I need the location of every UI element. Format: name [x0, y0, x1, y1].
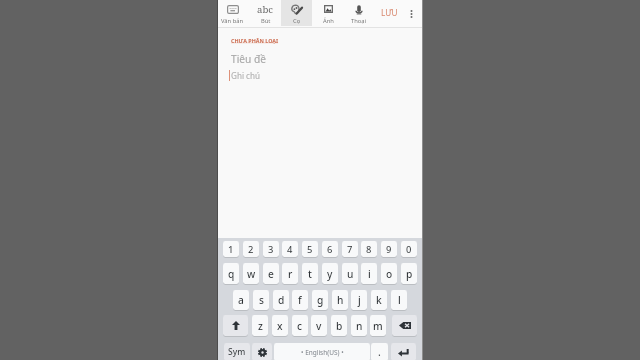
button[interactable]: h — [332, 290, 348, 310]
button[interactable]: m — [370, 315, 386, 336]
button[interactable]: Keyboard settings — [252, 343, 272, 360]
button[interactable]: i — [361, 263, 377, 284]
staticText: • English(US) • — [301, 348, 344, 357]
staticText: a — [238, 293, 244, 307]
button[interactable]: 1 — [223, 241, 239, 257]
button[interactable]: j — [351, 290, 367, 310]
staticText: 5 — [307, 243, 313, 256]
staticText: u — [347, 267, 354, 281]
staticText: e — [268, 267, 274, 281]
staticText: g — [317, 293, 324, 307]
button[interactable]: Enter — [391, 343, 416, 360]
button[interactable]: 2 — [243, 241, 259, 257]
button[interactable]: x — [272, 315, 288, 336]
staticText: n — [356, 319, 363, 333]
button[interactable]: 7 — [342, 241, 358, 257]
staticText: Bút — [261, 17, 271, 25]
staticText: . — [378, 345, 381, 359]
button[interactable]: 8 — [361, 241, 377, 257]
button[interactable]: Shift — [223, 315, 248, 336]
button[interactable]: 6 — [322, 241, 338, 257]
button[interactable]: w — [243, 263, 259, 284]
staticText: Cọ — [293, 17, 301, 25]
button[interactable]: z — [252, 315, 268, 336]
staticText: b — [336, 319, 343, 333]
staticText: l — [398, 293, 401, 307]
button[interactable]: n — [351, 315, 367, 336]
button[interactable]: d — [273, 290, 289, 310]
staticText: LƯU — [381, 7, 398, 18]
staticText: q — [228, 267, 235, 281]
staticText: h — [337, 293, 344, 307]
button[interactable]: Thoại — [343, 0, 374, 25]
staticText: abc — [257, 3, 274, 16]
button[interactable]: LƯU — [374, 0, 404, 25]
staticText: s — [259, 293, 264, 307]
staticText: v — [316, 319, 322, 333]
button[interactable]: q — [223, 263, 239, 284]
staticText: i — [368, 267, 371, 281]
staticText: r — [288, 267, 293, 281]
button[interactable]: c — [292, 315, 308, 336]
staticText: 9 — [386, 243, 392, 256]
button[interactable]: 5 — [302, 241, 318, 257]
button[interactable]: y — [322, 263, 338, 284]
staticText: f — [298, 293, 302, 307]
button[interactable]: CHƯA PHÂN LOẠI — [231, 37, 279, 44]
staticText: 1 — [228, 243, 234, 256]
button[interactable]: s — [253, 290, 269, 310]
button[interactable]: 9 — [381, 241, 397, 257]
staticText: Ảnh — [323, 17, 334, 25]
staticText: y — [327, 267, 333, 281]
staticText: k — [376, 293, 382, 307]
button[interactable]: 0 — [401, 241, 417, 257]
button[interactable]: Space — [274, 343, 370, 360]
staticText: x — [277, 319, 283, 333]
staticText: o — [386, 267, 393, 281]
button[interactable]: t — [302, 263, 318, 284]
staticText: j — [358, 293, 361, 307]
staticText: t — [308, 267, 312, 281]
button[interactable]: o — [381, 263, 397, 284]
staticText: m — [373, 319, 383, 333]
button[interactable]: r — [282, 263, 298, 284]
button[interactable]: a — [233, 290, 249, 310]
button[interactable]: e — [263, 263, 279, 284]
button[interactable]: Văn bản — [217, 0, 248, 25]
staticText: p — [406, 267, 413, 281]
button[interactable]: . — [371, 343, 388, 360]
button[interactable]: g — [312, 290, 328, 310]
button[interactable]: 4 — [282, 241, 298, 257]
staticText: 2 — [248, 243, 254, 256]
button[interactable]: l — [391, 290, 407, 310]
staticText: w — [247, 267, 256, 281]
button[interactable]: 3 — [263, 241, 279, 257]
staticText: 7 — [347, 243, 353, 256]
staticText: Sym — [228, 346, 246, 358]
staticText: Thoại — [351, 17, 367, 25]
staticText: 6 — [327, 243, 333, 256]
button[interactable]: u — [342, 263, 358, 284]
button[interactable]: k — [371, 290, 387, 310]
staticText: Ghi chú — [231, 70, 260, 81]
staticText: 8 — [366, 243, 372, 256]
button[interactable]: More options — [404, 0, 418, 25]
staticText: c — [297, 319, 303, 333]
button[interactable]: b — [331, 315, 347, 336]
button[interactable]: f — [292, 290, 308, 310]
button[interactable]: Backspace — [392, 315, 417, 336]
staticText: 3 — [268, 243, 274, 256]
staticText: Tiêu đề — [231, 52, 267, 66]
staticText: Văn bản — [221, 17, 244, 25]
staticText: 0 — [406, 243, 412, 256]
button[interactable]: Sym — [224, 343, 250, 360]
staticText: d — [278, 293, 285, 307]
button[interactable]: v — [311, 315, 327, 336]
button[interactable]: Ảnh — [313, 0, 344, 25]
staticText: 4 — [287, 243, 293, 256]
button[interactable]: abc — [250, 0, 281, 25]
staticText: z — [258, 319, 263, 333]
button[interactable]: p — [401, 263, 417, 284]
button[interactable]: Cọ — [281, 0, 312, 25]
staticText: CHƯA PHÂN LOẠI — [231, 37, 279, 44]
